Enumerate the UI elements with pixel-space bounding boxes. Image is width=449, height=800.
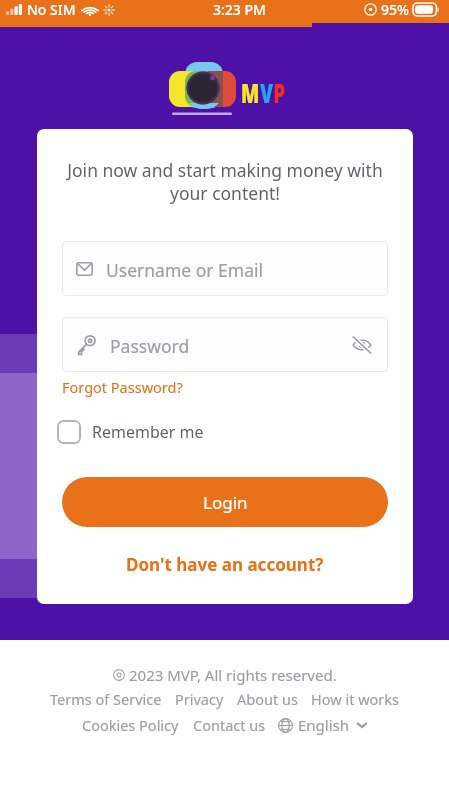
staticText: Username or Email [106, 258, 263, 282]
staticText: Join now and start making money with you… [62, 158, 388, 205]
staticText: 95% [381, 0, 409, 19]
staticText: Don't have an account? [126, 553, 324, 576]
staticText: V [260, 74, 273, 111]
staticText: About us [237, 689, 298, 709]
button[interactable]: Username or Email [62, 241, 388, 296]
button[interactable]: Forgot Password? [62, 377, 183, 397]
staticText: Cookies Policy [82, 715, 179, 735]
button[interactable]: Don't have an account? [62, 553, 388, 576]
button[interactable]: Terms of Service [50, 689, 162, 709]
staticText: Terms of Service [50, 689, 162, 709]
staticText: No SIM [27, 0, 76, 19]
button[interactable]: Remember me [57, 420, 204, 444]
staticText: Forgot Password? [62, 377, 183, 397]
staticText: Contact us [193, 715, 266, 735]
button[interactable]: About us [237, 689, 298, 709]
staticText: P [273, 74, 286, 111]
staticText: 3:23 PM [213, 0, 266, 19]
staticText: Login [203, 491, 248, 514]
staticText: Privacy [175, 689, 224, 709]
staticText: Password [110, 334, 190, 358]
button[interactable]: English [278, 715, 368, 735]
button[interactable]: Privacy [175, 689, 224, 709]
staticText: 2023 MVP, All rights reserved. [129, 665, 337, 685]
button[interactable]: Login [62, 477, 388, 527]
staticText: Remember me [92, 421, 204, 443]
staticText: English [298, 715, 350, 735]
button[interactable]: Show password [349, 332, 375, 358]
staticText: M [241, 74, 260, 111]
button[interactable]: Password [62, 317, 388, 372]
button[interactable]: Contact us [193, 715, 266, 735]
staticText: How it works [311, 689, 399, 709]
button[interactable]: Cookies Policy [82, 715, 179, 735]
button[interactable]: How it works [311, 689, 399, 709]
